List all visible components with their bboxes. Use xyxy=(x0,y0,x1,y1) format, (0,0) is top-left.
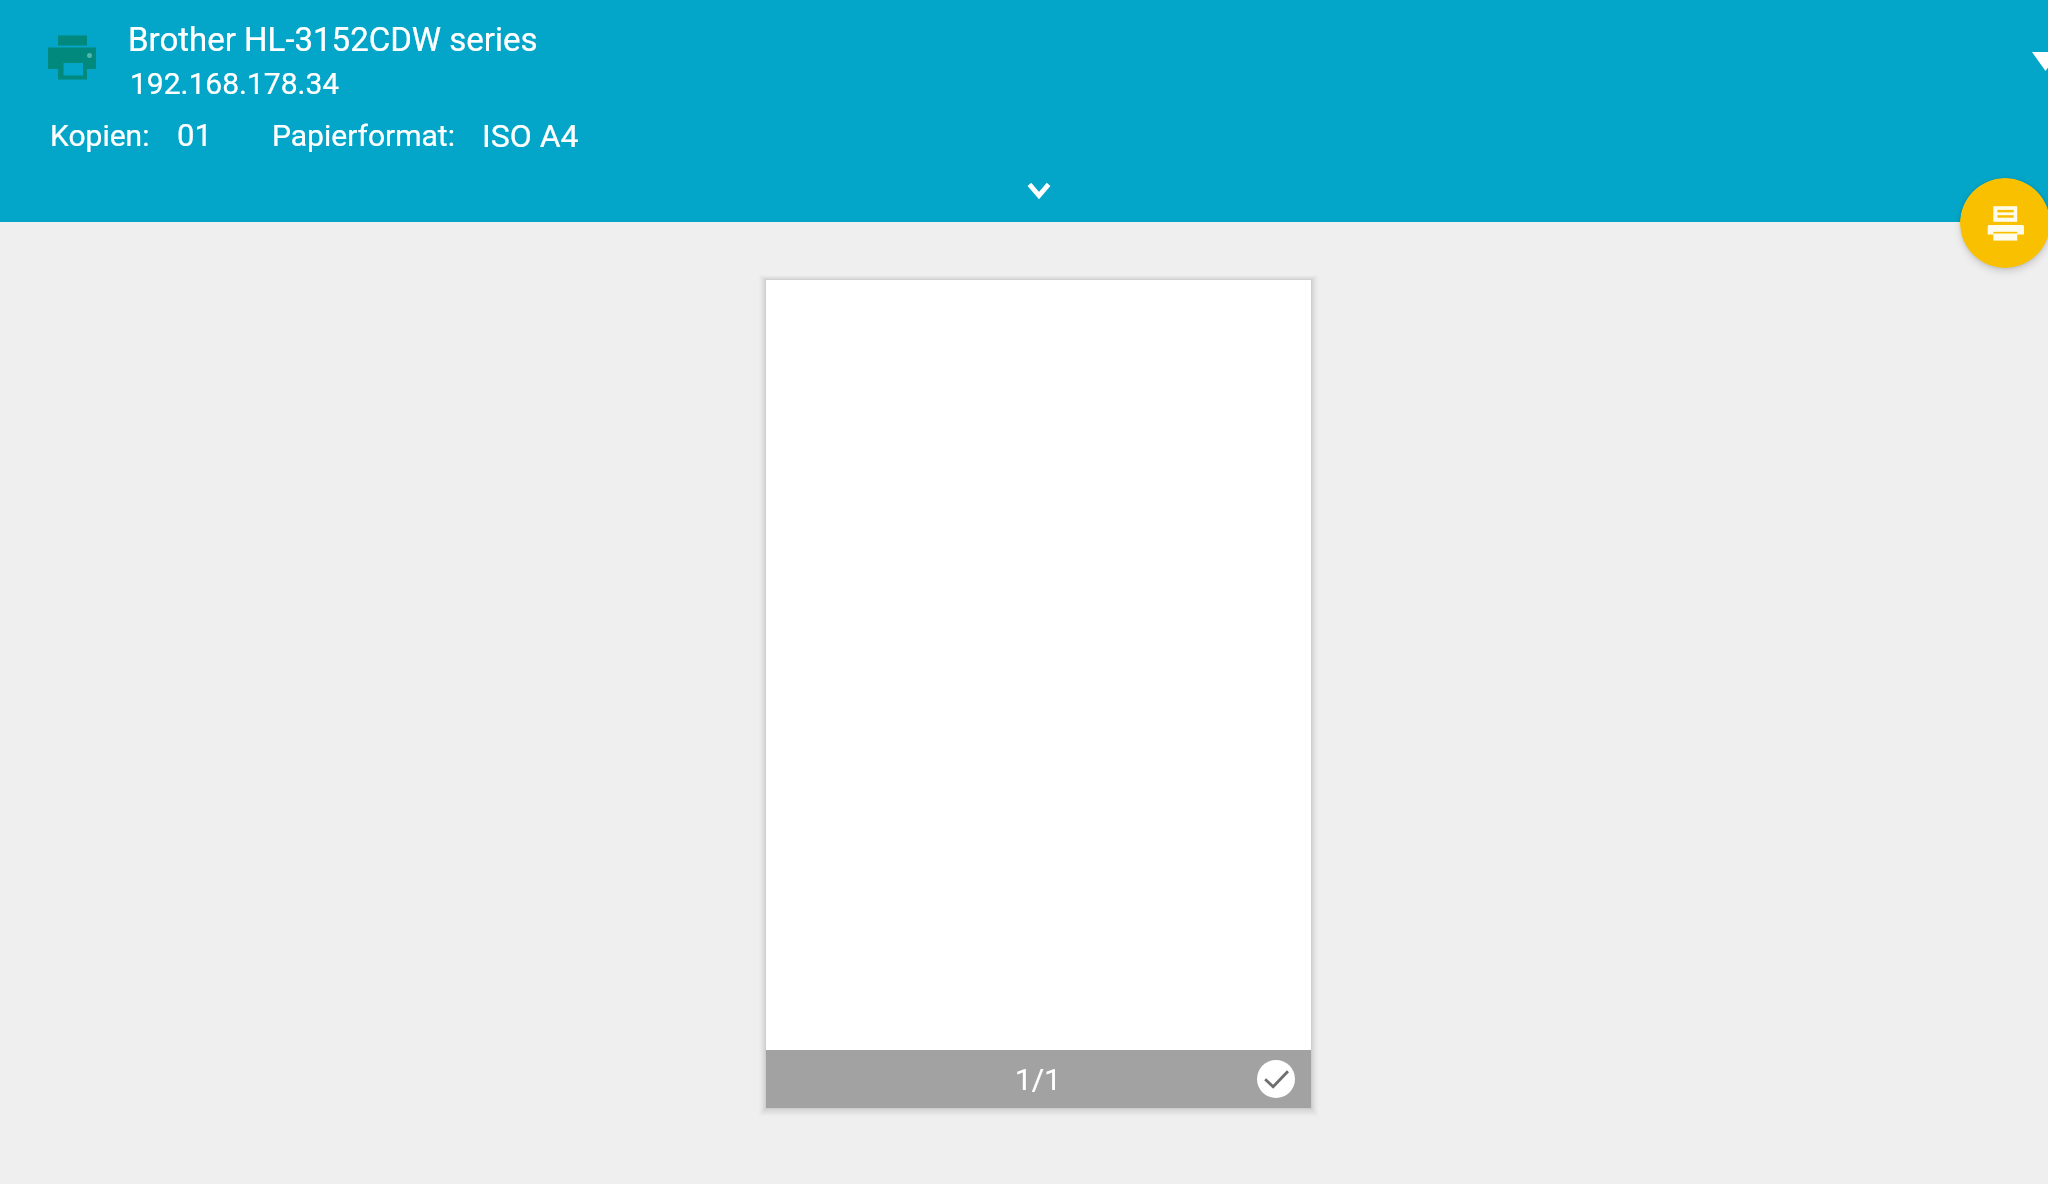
staticText: Kopien: xyxy=(50,118,150,153)
staticText: ISO A4 xyxy=(482,117,579,155)
staticText: 01 xyxy=(177,117,212,153)
button[interactable]: Page selected xyxy=(1257,1060,1295,1098)
button[interactable]: 1/1 xyxy=(766,280,1311,1108)
staticText: 192.168.178.34 xyxy=(130,66,340,101)
button[interactable]: Print xyxy=(1960,178,2048,268)
button[interactable]: Show more print options xyxy=(991,164,1087,216)
staticText: Papierformat: xyxy=(272,118,455,153)
staticText: Brother HL-3152CDW series xyxy=(128,20,538,59)
staticText: 1/1 xyxy=(1015,1062,1062,1097)
